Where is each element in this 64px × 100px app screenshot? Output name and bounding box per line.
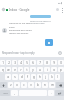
staticText: ▴▴ ▮	[58, 1, 63, 4]
staticText: w	[7, 68, 10, 72]
button[interactable]: Backspace	[56, 82, 64, 88]
staticText: q	[2, 68, 4, 72]
button[interactable]: Send	[45, 39, 53, 46]
staticText: 3	[14, 61, 16, 65]
staticText: 9	[53, 61, 55, 65]
staticText: t	[26, 68, 28, 72]
button[interactable]: x	[14, 82, 20, 88]
button[interactable]: Respond now · tap to reply	[2, 49, 62, 57]
button[interactable]: b	[35, 82, 41, 88]
staticText: b	[37, 83, 39, 87]
button[interactable]: Account	[56, 8, 59, 11]
staticText: s	[14, 75, 16, 79]
staticText: y	[32, 68, 34, 72]
button[interactable]: c	[21, 82, 27, 88]
staticText: d	[21, 75, 23, 79]
button[interactable]: o	[51, 67, 57, 72]
staticText: x	[16, 83, 18, 87]
button[interactable]: 9	[51, 60, 57, 65]
button[interactable]: l	[55, 74, 60, 80]
button[interactable]: p	[58, 67, 64, 72]
staticText: ,	[14, 91, 15, 95]
staticText: 0	[60, 61, 62, 65]
button[interactable]: g	[31, 74, 36, 80]
staticText: v	[30, 83, 32, 87]
staticText: n	[44, 83, 46, 87]
button[interactable]: Navigate up	[1, 7, 6, 12]
button[interactable]: k	[49, 74, 54, 80]
button[interactable]: v	[28, 82, 34, 88]
staticText: l	[57, 75, 58, 79]
button[interactable]: 1	[0, 60, 5, 65]
staticText: p	[60, 68, 62, 72]
staticText: j	[45, 75, 46, 79]
staticText: k	[51, 75, 53, 79]
staticText: g	[33, 75, 35, 79]
button[interactable]: z	[8, 82, 13, 88]
staticText: f	[27, 75, 28, 79]
staticText: 6	[32, 61, 34, 65]
staticText: e	[14, 68, 16, 72]
staticText: i	[47, 68, 48, 72]
button[interactable]: r	[18, 67, 23, 72]
button[interactable]: 5	[24, 60, 29, 65]
staticText: m	[51, 83, 54, 87]
staticText: 2	[8, 61, 10, 65]
button[interactable]: 7	[37, 60, 43, 65]
button[interactable]: n	[42, 82, 48, 88]
staticText: 1	[2, 61, 4, 65]
button[interactable]: u	[37, 67, 43, 72]
button[interactable]: i	[44, 67, 50, 72]
button[interactable]: f	[25, 74, 30, 80]
staticText: .	[51, 91, 52, 95]
staticText: h	[39, 75, 41, 79]
button[interactable]: 0	[58, 60, 64, 65]
staticText: 8	[46, 61, 48, 65]
staticText: c	[23, 83, 25, 87]
button[interactable]: 3	[12, 60, 17, 65]
button[interactable]: e	[12, 67, 17, 72]
staticText: z	[10, 83, 12, 87]
button[interactable]: More options	[61, 7, 63, 13]
staticText: ?123	[3, 92, 8, 95]
button[interactable]: 4	[18, 60, 23, 65]
button[interactable]: 6	[30, 60, 36, 65]
button[interactable]: t	[24, 67, 29, 72]
button[interactable]: h	[37, 74, 42, 80]
button[interactable]: j	[43, 74, 48, 80]
button[interactable]: q	[0, 67, 5, 72]
button[interactable]	[30, 15, 51, 18]
staticText: Respond now · tap to reply	[2, 51, 35, 55]
button[interactable]: d	[19, 74, 24, 80]
button[interactable]: m	[49, 82, 55, 88]
staticText: Inbox · Google	[9, 8, 30, 12]
button[interactable]: Enter	[55, 90, 64, 96]
button[interactable]: ,	[11, 90, 18, 96]
button[interactable]: ?123	[0, 90, 10, 96]
staticText: u	[39, 68, 41, 72]
staticText: 4	[20, 61, 22, 65]
button[interactable]: a	[5, 74, 11, 80]
button[interactable]: w	[6, 67, 11, 72]
button[interactable]: 8	[44, 60, 50, 65]
staticText: o	[53, 68, 55, 72]
staticText: Welcome to the new inbox experience with…	[9, 22, 35, 34]
staticText: Sent to the team a moment ago	[30, 19, 55, 25]
staticText: 5	[26, 61, 28, 65]
button[interactable]: y	[30, 67, 36, 72]
button[interactable]: 2	[6, 60, 11, 65]
button[interactable]: Shift	[0, 82, 7, 88]
staticText: r	[20, 68, 22, 72]
staticText: a	[7, 75, 9, 79]
button[interactable]: .	[48, 90, 54, 96]
button[interactable]: s	[12, 74, 18, 80]
staticText: 7	[39, 61, 41, 65]
